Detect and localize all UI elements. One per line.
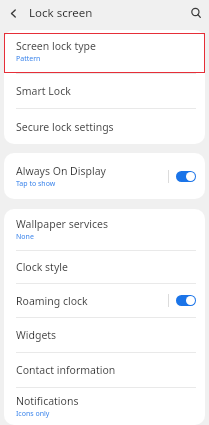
staticText: Tap to show (16, 179, 56, 189)
button[interactable]: Toggle on (176, 295, 196, 306)
button[interactable]: Widgets (4, 318, 205, 352)
button[interactable]: Back (0, 0, 26, 26)
staticText: Clock style (16, 260, 68, 274)
staticText: Lock screen (29, 5, 93, 21)
button[interactable]: Toggle on (176, 171, 196, 182)
button[interactable]: Always On Display (4, 153, 205, 199)
button[interactable]: Secure lock settings (4, 109, 205, 144)
staticText: Pattern (16, 54, 41, 64)
staticText: Screen lock type (16, 39, 96, 53)
button[interactable]: Notifications (4, 388, 205, 425)
staticText: None (16, 232, 34, 242)
staticText: Contact information (16, 363, 116, 377)
button[interactable]: Roaming clock (4, 284, 205, 317)
staticText: Smart Lock (16, 84, 71, 98)
staticText: Secure lock settings (16, 120, 114, 134)
button[interactable]: Clock style (4, 251, 205, 283)
button[interactable]: Wallpaper services (4, 209, 205, 250)
staticText: Roaming clock (16, 294, 88, 308)
staticText: Icons only (16, 409, 50, 419)
button[interactable]: Search (183, 0, 209, 26)
staticText: Notifications (16, 394, 79, 408)
staticText: Widgets (16, 328, 57, 342)
staticText: Wallpaper services (16, 217, 108, 231)
button[interactable]: Smart Lock (4, 74, 205, 108)
button[interactable]: Screen lock type (4, 30, 205, 73)
staticText: Always On Display (16, 164, 106, 178)
button[interactable]: Contact information (4, 353, 205, 387)
